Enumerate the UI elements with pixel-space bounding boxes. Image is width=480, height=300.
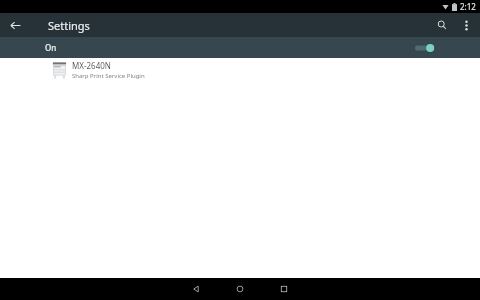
button[interactable]: Home bbox=[218, 278, 262, 300]
staticText: MX-2640N bbox=[72, 60, 111, 71]
staticText: Sharp Print Service Plugin bbox=[72, 72, 145, 80]
staticText: Settings bbox=[48, 18, 90, 33]
button[interactable]: More options bbox=[454, 13, 478, 37]
button[interactable]: On bbox=[0, 37, 480, 58]
button[interactable]: Search bbox=[430, 13, 454, 37]
button[interactable]: Recent apps bbox=[262, 278, 306, 300]
button[interactable]: MX-2640N bbox=[0, 58, 480, 82]
staticText: On bbox=[45, 42, 57, 53]
button[interactable]: Back bbox=[174, 278, 218, 300]
button[interactable]: Back bbox=[4, 14, 26, 36]
staticText: 2:12 bbox=[460, 1, 476, 12]
